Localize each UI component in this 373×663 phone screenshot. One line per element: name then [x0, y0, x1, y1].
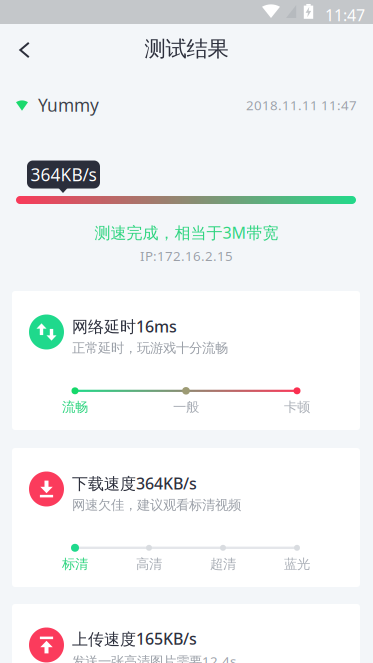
staticText: 蓝光	[284, 556, 310, 572]
staticText: 发送一张高清图片需要12.4s	[72, 652, 236, 663]
staticText: Yummy	[38, 93, 99, 116]
staticText: 测试结果	[144, 36, 228, 62]
staticText: 2018.11.11 11:47	[246, 96, 357, 114]
button[interactable]: 网络延时16ms	[12, 291, 360, 430]
button[interactable]: Back	[2, 28, 46, 72]
staticText: 11:47	[325, 4, 365, 26]
button[interactable]: 下载速度364KB/s	[12, 448, 360, 587]
button[interactable]: 上传速度165KB/s	[12, 604, 360, 663]
staticText: 流畅	[62, 399, 88, 415]
staticText: 测速完成，相当于3M带宽	[94, 222, 278, 243]
staticText: 网速欠佳，建议观看标清视频	[72, 497, 241, 513]
staticText: 364KB/s	[30, 163, 96, 186]
staticText: IP:172.16.2.15	[140, 247, 233, 265]
staticText: 高清	[136, 556, 162, 572]
staticText: 标清	[62, 556, 88, 572]
staticText: 网络延时16ms	[72, 316, 177, 337]
staticText: 卡顿	[284, 399, 310, 415]
staticText: 上传速度165KB/s	[72, 628, 197, 649]
staticText: 一般	[173, 399, 199, 415]
staticText: 下载速度364KB/s	[72, 473, 197, 494]
staticText: 正常延时，玩游戏十分流畅	[72, 340, 228, 356]
staticText: 超清	[210, 556, 236, 572]
